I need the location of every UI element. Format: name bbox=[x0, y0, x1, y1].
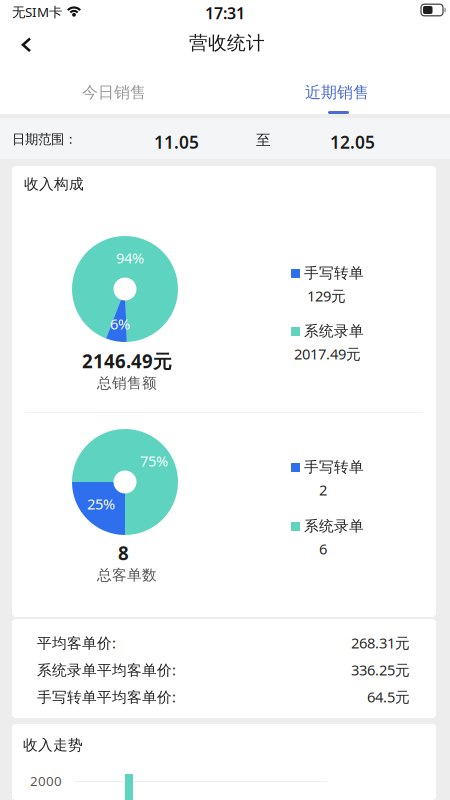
button[interactable]: 12.05 bbox=[294, 118, 404, 159]
staticText: 手写转单 bbox=[304, 264, 364, 282]
staticText: 6 bbox=[319, 539, 327, 558]
button[interactable]: 返回 bbox=[0, 25, 48, 69]
staticText: 2 bbox=[319, 480, 327, 499]
staticText: 系统录单平均客单价: bbox=[37, 660, 176, 679]
staticText: 64.5元 bbox=[367, 687, 410, 706]
staticText: 总销售额 bbox=[97, 374, 157, 392]
staticText: 营收统计 bbox=[189, 31, 265, 54]
staticText: 12.05 bbox=[330, 130, 375, 153]
staticText: 75% bbox=[140, 451, 168, 470]
staticText: 2017.49元 bbox=[294, 344, 361, 363]
staticText: 近期销售 bbox=[305, 82, 369, 102]
staticText: 总客单数 bbox=[97, 566, 157, 584]
staticText: 11.05 bbox=[154, 130, 199, 153]
button[interactable]: 11.05 bbox=[118, 118, 228, 159]
staticText: 6% bbox=[110, 314, 130, 333]
staticText: 手写转单 bbox=[304, 458, 364, 476]
staticText: 至 bbox=[256, 131, 271, 149]
staticText: 8 bbox=[118, 540, 129, 565]
button[interactable]: 今日销售 bbox=[0, 70, 225, 114]
staticText: 系统录单 bbox=[304, 517, 364, 535]
staticText: 336.25元 bbox=[351, 660, 410, 679]
staticText: 17:31 bbox=[205, 2, 245, 24]
staticText: 268.31元 bbox=[351, 633, 410, 652]
staticText: 129元 bbox=[307, 286, 346, 305]
staticText: 手写转单平均客单价: bbox=[37, 687, 176, 706]
staticText: 2146.49元 bbox=[82, 348, 172, 373]
staticText: 今日销售 bbox=[82, 82, 146, 102]
staticText: 25% bbox=[87, 494, 115, 513]
staticText: 日期范围： bbox=[12, 131, 77, 147]
staticText: 收入走势 bbox=[23, 736, 83, 754]
staticText: 无SIM卡 bbox=[12, 3, 62, 21]
staticText: 2000 bbox=[30, 772, 62, 790]
staticText: 94% bbox=[116, 248, 144, 267]
staticText: 收入构成 bbox=[24, 175, 84, 193]
button[interactable]: 近期销售 bbox=[225, 70, 450, 114]
staticText: 平均客单价: bbox=[37, 633, 116, 652]
staticText: 系统录单 bbox=[304, 322, 364, 340]
